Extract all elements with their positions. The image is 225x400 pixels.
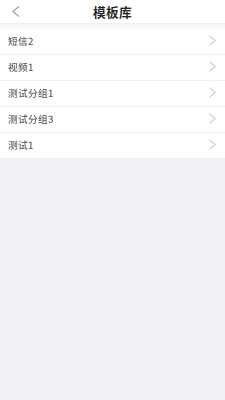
staticText: 模板库 [93, 2, 132, 21]
staticText: 测试分组1 [8, 85, 53, 99]
button[interactable]: 测试分组1 [0, 81, 225, 107]
button[interactable]: 短信2 [0, 29, 225, 55]
button[interactable]: Back [0, 0, 30, 23]
button[interactable]: 测试1 [0, 133, 225, 159]
button[interactable]: 测试分组3 [0, 107, 225, 133]
staticText: 短信2 [8, 33, 33, 47]
staticText: 测试1 [8, 137, 33, 151]
button[interactable]: 视频1 [0, 55, 225, 81]
staticText: 测试分组3 [8, 111, 53, 125]
staticText: 视频1 [8, 59, 33, 73]
